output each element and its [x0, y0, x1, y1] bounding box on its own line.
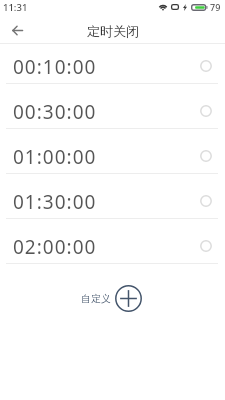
button[interactable]: 01:30:00 [0, 173, 225, 218]
button[interactable]: Back [4, 17, 30, 43]
button[interactable]: 自定义 [81, 285, 142, 312]
button[interactable]: 00:10:00 [0, 44, 225, 83]
staticText: 00:30:00 [13, 99, 97, 125]
staticText: 01:00:00 [13, 144, 97, 170]
staticText: 79 [210, 1, 221, 13]
button[interactable]: 00:30:00 [0, 83, 225, 128]
staticText: 定时关闭 [87, 23, 139, 39]
staticText: 01:30:00 [13, 189, 97, 215]
staticText: 11:31 [3, 1, 28, 14]
staticText: 02:00:00 [13, 234, 97, 260]
button[interactable]: 01:00:00 [0, 128, 225, 173]
staticText: 自定义 [81, 293, 111, 305]
staticText: 00:10:00 [13, 54, 97, 80]
button[interactable]: 02:00:00 [0, 218, 225, 263]
